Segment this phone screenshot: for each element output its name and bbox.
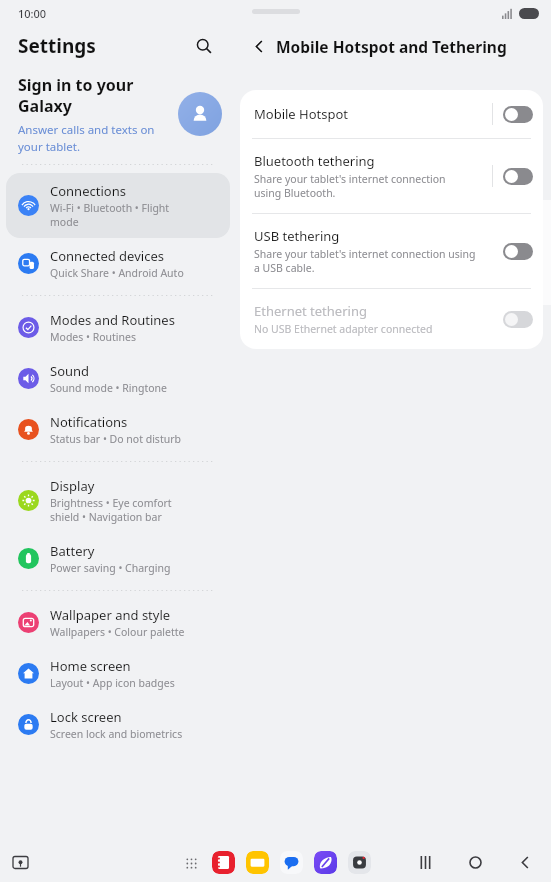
staticText: Wi-Fi • Bluetooth • Flight mode: [50, 201, 170, 229]
button[interactable]: Wallpaper and style: [6, 597, 230, 648]
button[interactable]: camera: [348, 851, 371, 874]
staticText: Share your tablet's internet connection …: [254, 172, 446, 200]
button[interactable]: Toggle: [503, 243, 533, 260]
button[interactable]: Display: [6, 468, 230, 533]
staticText: Mobile Hotspot: [254, 105, 349, 123]
button[interactable]: Connections: [6, 173, 230, 238]
button[interactable]: Modes and Routines: [6, 302, 230, 353]
button[interactable]: messages: [280, 851, 303, 874]
button[interactable]: Recents: [413, 850, 437, 874]
staticText: Mobile Hotspot and Tethering: [276, 36, 507, 57]
button[interactable]: Back: [246, 33, 272, 59]
staticText: Home screen: [50, 657, 131, 675]
staticText: Screen lock and biometrics: [50, 727, 183, 741]
staticText: Answer calls and texts on your tablet.: [18, 122, 155, 154]
button[interactable]: Mobile Hotspot: [240, 90, 543, 138]
staticText: Display: [50, 477, 95, 495]
button[interactable]: Battery: [6, 533, 230, 584]
button[interactable]: Toggle: [503, 168, 533, 185]
staticText: Wallpapers • Colour palette: [50, 625, 185, 639]
button[interactable]: Sign in to your Galaxy: [0, 66, 236, 154]
staticText: Power saving • Charging: [50, 561, 171, 575]
button[interactable]: Toggle: [503, 311, 533, 328]
staticText: Status bar • Do not disturb: [50, 432, 181, 446]
button[interactable]: Connected devices: [6, 238, 230, 289]
staticText: USB tethering: [254, 227, 340, 245]
staticText: Brightness • Eye comfort shield • Naviga…: [50, 496, 172, 524]
staticText: Quick Share • Android Auto: [50, 266, 184, 280]
button[interactable]: Apps: [181, 853, 201, 873]
staticText: 10:00: [18, 6, 47, 21]
button[interactable]: Back: [513, 850, 537, 874]
button[interactable]: Notifications: [6, 404, 230, 455]
staticText: Sound: [50, 362, 90, 380]
button[interactable]: Capture: [8, 850, 32, 874]
staticText: Battery: [50, 542, 95, 560]
staticText: Connected devices: [50, 247, 164, 265]
staticText: Share your tablet's internet connection …: [254, 247, 476, 275]
button[interactable]: Sound: [6, 353, 230, 404]
button[interactable]: notes: [212, 851, 235, 874]
staticText: Lock screen: [50, 708, 122, 726]
staticText: Wallpaper and style: [50, 606, 171, 624]
button[interactable]: Search: [190, 32, 218, 60]
staticText: Settings: [18, 33, 96, 59]
staticText: Ethernet tethering: [254, 302, 367, 320]
staticText: Layout • App icon badges: [50, 676, 175, 690]
staticText: Bluetooth tethering: [254, 152, 375, 170]
staticText: Modes • Routines: [50, 330, 137, 344]
button[interactable]: Home screen: [6, 648, 230, 699]
button[interactable]: Home: [463, 850, 487, 874]
staticText: Notifications: [50, 413, 128, 431]
button[interactable]: Lock screen: [6, 699, 230, 750]
button[interactable]: internet: [314, 851, 337, 874]
staticText: Connections: [50, 182, 126, 200]
button[interactable]: Bluetooth tethering: [240, 139, 543, 213]
staticText: Sound mode • Ringtone: [50, 381, 167, 395]
staticText: Modes and Routines: [50, 311, 175, 329]
staticText: No USB Ethernet adapter connected: [254, 322, 433, 336]
staticText: Sign in to your Galaxy: [18, 74, 134, 117]
button[interactable]: Toggle: [503, 106, 533, 123]
button[interactable]: files: [246, 851, 269, 874]
button[interactable]: USB tethering: [240, 214, 543, 288]
button[interactable]: Ethernet tethering: [240, 289, 543, 349]
